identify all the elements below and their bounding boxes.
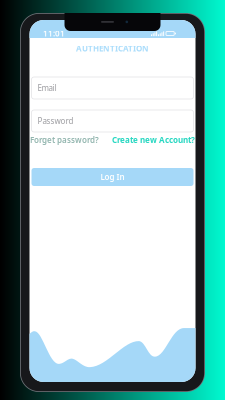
staticText: AUTHENTICATION [76,43,149,54]
staticText: Create new Account? [112,135,195,145]
button[interactable]: Forget password? [30,132,102,148]
button[interactable]: Email [31,77,193,99]
staticText: Forget password? [30,135,99,145]
button[interactable]: Create new Account? [107,132,195,148]
staticText: 11:01 [43,28,65,39]
button[interactable]: Log In [31,168,193,186]
staticText: Password [37,116,73,126]
staticText: Log In [100,172,124,182]
button[interactable]: Password [31,110,193,132]
staticText: Email [37,83,56,93]
